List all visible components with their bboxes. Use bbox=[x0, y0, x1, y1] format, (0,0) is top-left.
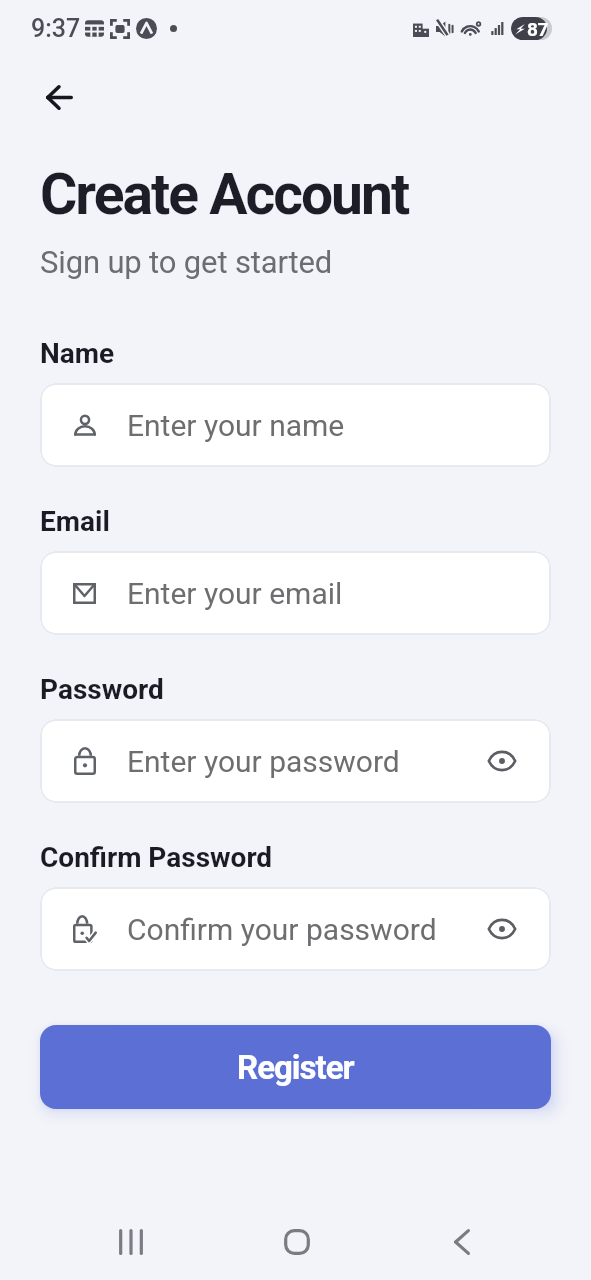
staticText: Enter your name bbox=[127, 408, 345, 443]
staticText: Password bbox=[40, 673, 164, 706]
staticText: Enter your email bbox=[127, 576, 343, 611]
staticText: 87 bbox=[527, 18, 549, 40]
staticText: Register bbox=[237, 1048, 354, 1087]
button[interactable]: Confirm your password bbox=[40, 887, 551, 971]
staticText: Confirm your password bbox=[127, 912, 437, 947]
button[interactable]: Enter your email bbox=[40, 551, 551, 635]
button[interactable]: Home bbox=[214, 1216, 379, 1268]
staticText: Name bbox=[40, 337, 115, 370]
staticText: Email bbox=[40, 505, 110, 538]
button[interactable]: Toggle password visibility bbox=[480, 907, 524, 951]
button[interactable]: Back bbox=[379, 1216, 544, 1268]
button[interactable]: Enter your password bbox=[40, 719, 551, 803]
button[interactable]: Register bbox=[40, 1025, 551, 1109]
staticText: Create Account bbox=[40, 161, 409, 228]
button[interactable]: Back bbox=[30, 68, 88, 126]
button[interactable]: Toggle password visibility bbox=[480, 739, 524, 783]
staticText: Enter your password bbox=[127, 744, 400, 779]
button[interactable]: Recent apps bbox=[48, 1216, 214, 1268]
staticText: Confirm Password bbox=[40, 841, 273, 874]
staticText: Sign up to get started bbox=[40, 244, 333, 280]
button[interactable]: Enter your name bbox=[40, 383, 551, 467]
staticText: 9:37 bbox=[31, 14, 81, 43]
